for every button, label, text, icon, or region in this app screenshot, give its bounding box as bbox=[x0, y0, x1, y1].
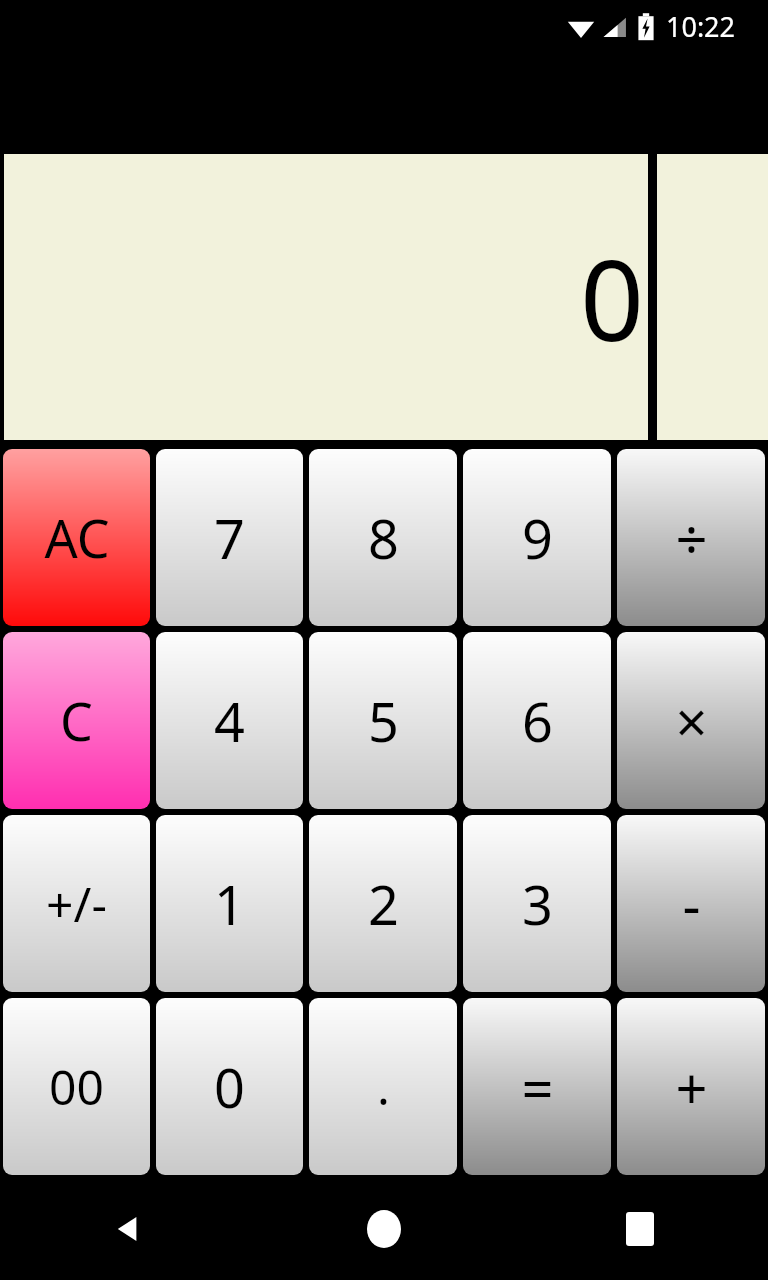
staticText: +/- bbox=[46, 871, 107, 936]
button[interactable]: 00 bbox=[3, 998, 150, 1175]
button[interactable]: 2 bbox=[309, 815, 457, 992]
button[interactable]: Multiply bbox=[617, 632, 765, 809]
staticText: 00 bbox=[49, 1054, 104, 1119]
staticText: 3 bbox=[522, 867, 553, 941]
staticText: AC bbox=[44, 502, 110, 573]
button[interactable]: 6 bbox=[463, 632, 611, 809]
button[interactable]: Equals bbox=[463, 998, 611, 1175]
button[interactable]: 1 bbox=[156, 815, 303, 992]
button[interactable]: 8 bbox=[309, 449, 457, 626]
staticText: . bbox=[377, 1054, 390, 1119]
button[interactable]: C bbox=[3, 632, 150, 809]
button[interactable]: Add bbox=[617, 998, 765, 1175]
button[interactable]: 7 bbox=[156, 449, 303, 626]
staticText: 0 bbox=[579, 221, 644, 374]
staticText: = bbox=[521, 1049, 554, 1125]
staticText: 1 bbox=[214, 867, 245, 941]
staticText: C bbox=[60, 685, 93, 756]
button[interactable]: Decimal point bbox=[309, 998, 457, 1175]
button[interactable]: AC bbox=[3, 449, 150, 626]
staticText: 7 bbox=[214, 501, 245, 575]
button[interactable]: 0 bbox=[156, 998, 303, 1175]
button[interactable]: 0 bbox=[4, 154, 648, 440]
button[interactable]: Recents bbox=[512, 1178, 768, 1280]
button[interactable]: Home bbox=[256, 1178, 512, 1280]
button[interactable]: 5 bbox=[309, 632, 457, 809]
staticText: - bbox=[682, 866, 701, 942]
button[interactable]: 4 bbox=[156, 632, 303, 809]
staticText: 9 bbox=[522, 501, 553, 575]
staticText: 10:22 bbox=[666, 8, 736, 45]
staticText: 4 bbox=[214, 684, 245, 758]
staticText: × bbox=[675, 683, 708, 759]
staticText: 2 bbox=[368, 867, 399, 941]
staticText: ÷ bbox=[675, 500, 708, 576]
button[interactable]: 9 bbox=[463, 449, 611, 626]
button[interactable]: Subtract bbox=[617, 815, 765, 992]
button[interactable]: +/- bbox=[3, 815, 150, 992]
staticText: + bbox=[675, 1049, 708, 1125]
staticText: 0 bbox=[214, 1050, 245, 1124]
button[interactable]: Back bbox=[0, 1178, 256, 1280]
staticText: 8 bbox=[368, 501, 399, 575]
staticText: 5 bbox=[368, 684, 399, 758]
staticText: 6 bbox=[522, 684, 553, 758]
button[interactable]: 3 bbox=[463, 815, 611, 992]
button[interactable]: Divide bbox=[617, 449, 765, 626]
